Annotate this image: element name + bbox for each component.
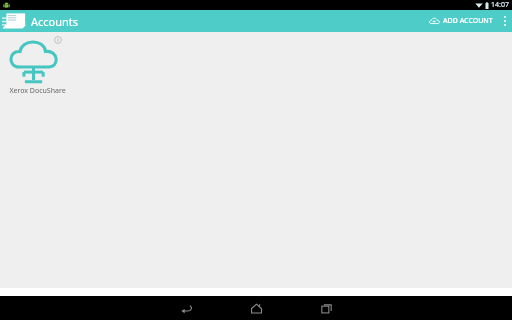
staticText: 14:07 xyxy=(491,0,509,10)
staticText: Xerox DocuShare xyxy=(9,86,66,96)
button[interactable]: Navigate up xyxy=(0,10,30,32)
button[interactable]: ADD ACCOUNT xyxy=(424,10,498,32)
staticText: ADD ACCOUNT xyxy=(443,16,493,26)
button[interactable]: More options xyxy=(498,10,512,32)
button[interactable]: Recent apps xyxy=(302,296,350,320)
button[interactable]: Xerox DocuShare xyxy=(3,36,71,96)
staticText: Accounts xyxy=(31,14,79,29)
button[interactable]: Home xyxy=(232,296,280,320)
button[interactable]: Back xyxy=(162,296,210,320)
